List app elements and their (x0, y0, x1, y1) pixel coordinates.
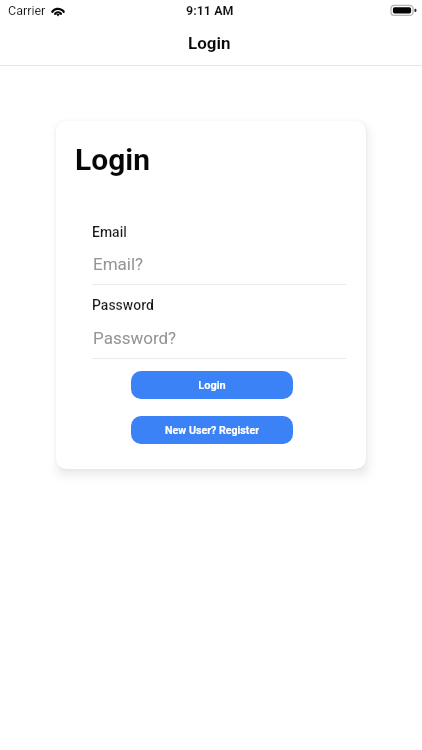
staticText: Password (92, 297, 154, 313)
staticText: 9:11 AM (186, 3, 234, 18)
button[interactable]: New User? Register (131, 416, 293, 444)
other: Battery full (391, 5, 417, 16)
button[interactable]: Email? (92, 251, 346, 286)
staticText: Email (92, 224, 127, 240)
staticText: Login (75, 142, 151, 177)
button[interactable]: Login (131, 371, 293, 399)
staticText: Carrier (8, 3, 46, 18)
staticText: Email? (93, 254, 144, 274)
other: Wi-Fi signal strength (50, 4, 66, 16)
button[interactable]: Password? (92, 325, 346, 360)
staticText: Login (188, 33, 231, 53)
staticText: Login (198, 379, 226, 392)
staticText: New User? Register (165, 424, 259, 437)
staticText: Password? (93, 328, 177, 348)
